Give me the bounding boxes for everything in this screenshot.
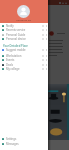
staticText: Workstation: [6, 54, 22, 58]
button[interactable]: My college: [0, 67, 48, 71]
staticText: Events: [6, 58, 15, 62]
staticText: Notify: [6, 24, 14, 28]
button[interactable]: Notify: [0, 24, 48, 28]
button[interactable]: Your Detailed Place: [3, 44, 28, 47]
button[interactable]: Settings: [0, 137, 48, 141]
staticText: Suggest mobile: [6, 48, 26, 52]
button[interactable]: Workstation: [0, 54, 48, 58]
staticText: Personal Guide: [6, 33, 26, 37]
button[interactable]: Personal Guide: [0, 33, 48, 37]
button[interactable]: Suggest mobile: [0, 48, 48, 52]
staticText: Personal device: [6, 37, 26, 41]
staticText: My college: [6, 67, 20, 71]
button[interactable]: Events: [0, 58, 48, 62]
button[interactable]: Messages: [0, 142, 48, 146]
button[interactable]: Deals: [0, 63, 48, 67]
staticText: Settings: [6, 137, 17, 141]
staticText: Messages: [6, 142, 19, 146]
staticText: Your Detailed Place: [3, 44, 28, 47]
button[interactable]: Personal device: [0, 37, 48, 41]
button[interactable]: Hanabusa Kei: [0, 0, 48, 23]
button[interactable]: Recents service: [0, 28, 48, 32]
staticText: Hanabusa Kei: [16, 19, 32, 22]
staticText: Deals: [6, 63, 13, 67]
staticText: Recents service: [6, 28, 26, 32]
